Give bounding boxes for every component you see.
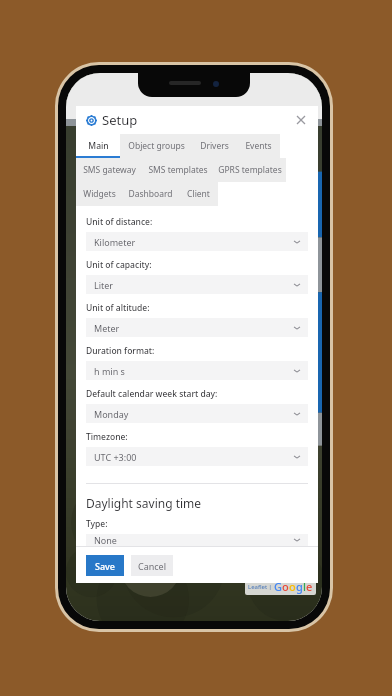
staticText: Meter [94, 322, 120, 334]
staticText: Monday [94, 408, 129, 420]
button[interactable]: Monday [86, 404, 308, 423]
staticText: GPRS templates [218, 164, 282, 176]
button[interactable]: Close [292, 111, 310, 129]
staticText: Main [88, 140, 109, 152]
button[interactable]: Drivers [192, 134, 236, 158]
staticText: V [76, 101, 86, 119]
staticText: G [274, 579, 282, 594]
button[interactable]: Dashboard [122, 182, 178, 206]
staticText: Events [245, 140, 272, 152]
staticText: Object groups [128, 140, 185, 152]
button[interactable]: Save [86, 555, 124, 576]
staticText: g [296, 579, 303, 594]
staticText: Kilometer [94, 236, 136, 248]
button[interactable]: UTC +3:00 [86, 447, 308, 466]
staticText: Type: [86, 518, 108, 530]
button[interactable]: h min s [86, 361, 308, 380]
staticText: Client [187, 188, 210, 200]
staticText: SMS gateway [83, 164, 136, 176]
staticText: Timezone: [86, 431, 128, 443]
staticText: o [289, 579, 296, 594]
staticText: Leaflet | [248, 583, 272, 591]
staticText: Widgets [83, 188, 116, 200]
staticText: e [306, 579, 313, 594]
staticText: SMS templates [148, 164, 208, 176]
staticText: Liter [94, 279, 114, 291]
staticText: Unit of altitude: [86, 302, 150, 314]
staticText: UTC +3:00 [94, 451, 137, 463]
staticText: Setup [102, 111, 138, 129]
button[interactable]: Events [236, 134, 280, 158]
button[interactable]: Main [76, 134, 120, 158]
staticText: Drivers [200, 140, 229, 152]
staticText: Cancel [138, 560, 167, 572]
button[interactable]: Client [178, 182, 218, 206]
staticText: None [94, 534, 117, 546]
staticText: Default calendar week start day: [86, 388, 218, 400]
staticText: Dashboard [128, 188, 173, 200]
staticText: Daylight saving time [86, 495, 202, 511]
button[interactable]: GPRS templates [214, 158, 286, 182]
button[interactable]: Kilometer [86, 232, 308, 251]
staticText: l [303, 579, 306, 594]
staticText: 8 [102, 101, 111, 119]
staticText: Duration format: [86, 345, 155, 357]
staticText: Save [95, 560, 116, 572]
staticText: o [282, 579, 289, 594]
button[interactable]: Object groups [120, 134, 192, 158]
button[interactable]: Cancel [131, 555, 173, 576]
button[interactable]: None [86, 534, 308, 546]
staticText: h min s [94, 365, 125, 377]
button[interactable]: Meter [86, 318, 308, 337]
staticText: Unit of capacity: [86, 259, 152, 271]
staticText: Unit of distance: [86, 216, 153, 228]
staticText: 8 [155, 101, 164, 119]
button[interactable]: SMS gateway [76, 158, 142, 182]
staticText: Q [127, 101, 139, 119]
button[interactable]: Widgets [76, 182, 122, 206]
button[interactable]: SMS templates [142, 158, 214, 182]
button[interactable]: Liter [86, 275, 308, 294]
